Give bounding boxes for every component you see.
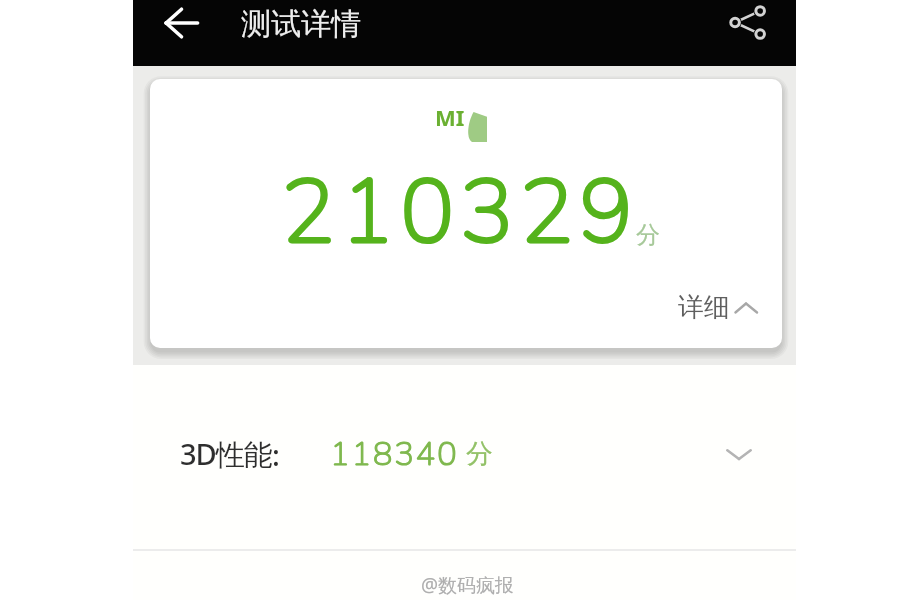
button[interactable]: 3D性能 [133, 415, 796, 493]
staticText: 测试详情 [241, 5, 361, 43]
staticText: : [272, 435, 280, 474]
button[interactable]: Back [151, 0, 211, 46]
staticText: 3D性能 [180, 434, 272, 474]
staticText: 118340 [330, 432, 459, 477]
staticText: 详细 [678, 291, 730, 324]
staticText: @数码疯报 [421, 572, 515, 598]
button[interactable]: 详细 [678, 291, 758, 324]
staticText: 分 [636, 220, 660, 250]
staticText: 210329 [281, 151, 639, 274]
staticText: 210329 [281, 151, 639, 274]
button[interactable]: MI [150, 79, 782, 348]
staticText: 分 [466, 437, 493, 471]
staticText: 118340 [330, 432, 459, 477]
staticText: MI [435, 102, 465, 132]
button[interactable]: Share [717, 0, 779, 44]
